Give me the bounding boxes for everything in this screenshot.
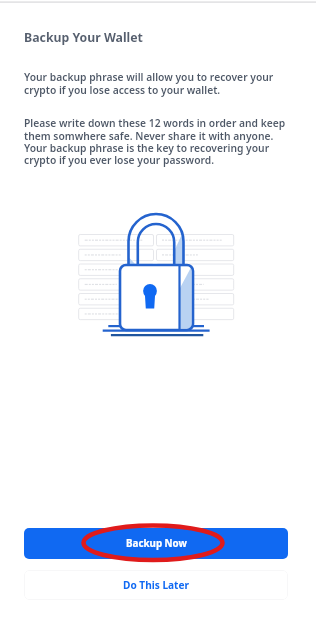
button[interactable]: Do This Later [24, 570, 288, 600]
staticText: Backup Your Wallet [24, 29, 143, 46]
staticText: Backup Now [126, 537, 187, 550]
staticText: Do This Later [123, 578, 190, 592]
button[interactable]: Backup Now [24, 528, 288, 559]
staticText: Please write down these 12 words in orde… [24, 116, 294, 167]
staticText: Your backup phrase will allow you to rec… [24, 70, 294, 97]
